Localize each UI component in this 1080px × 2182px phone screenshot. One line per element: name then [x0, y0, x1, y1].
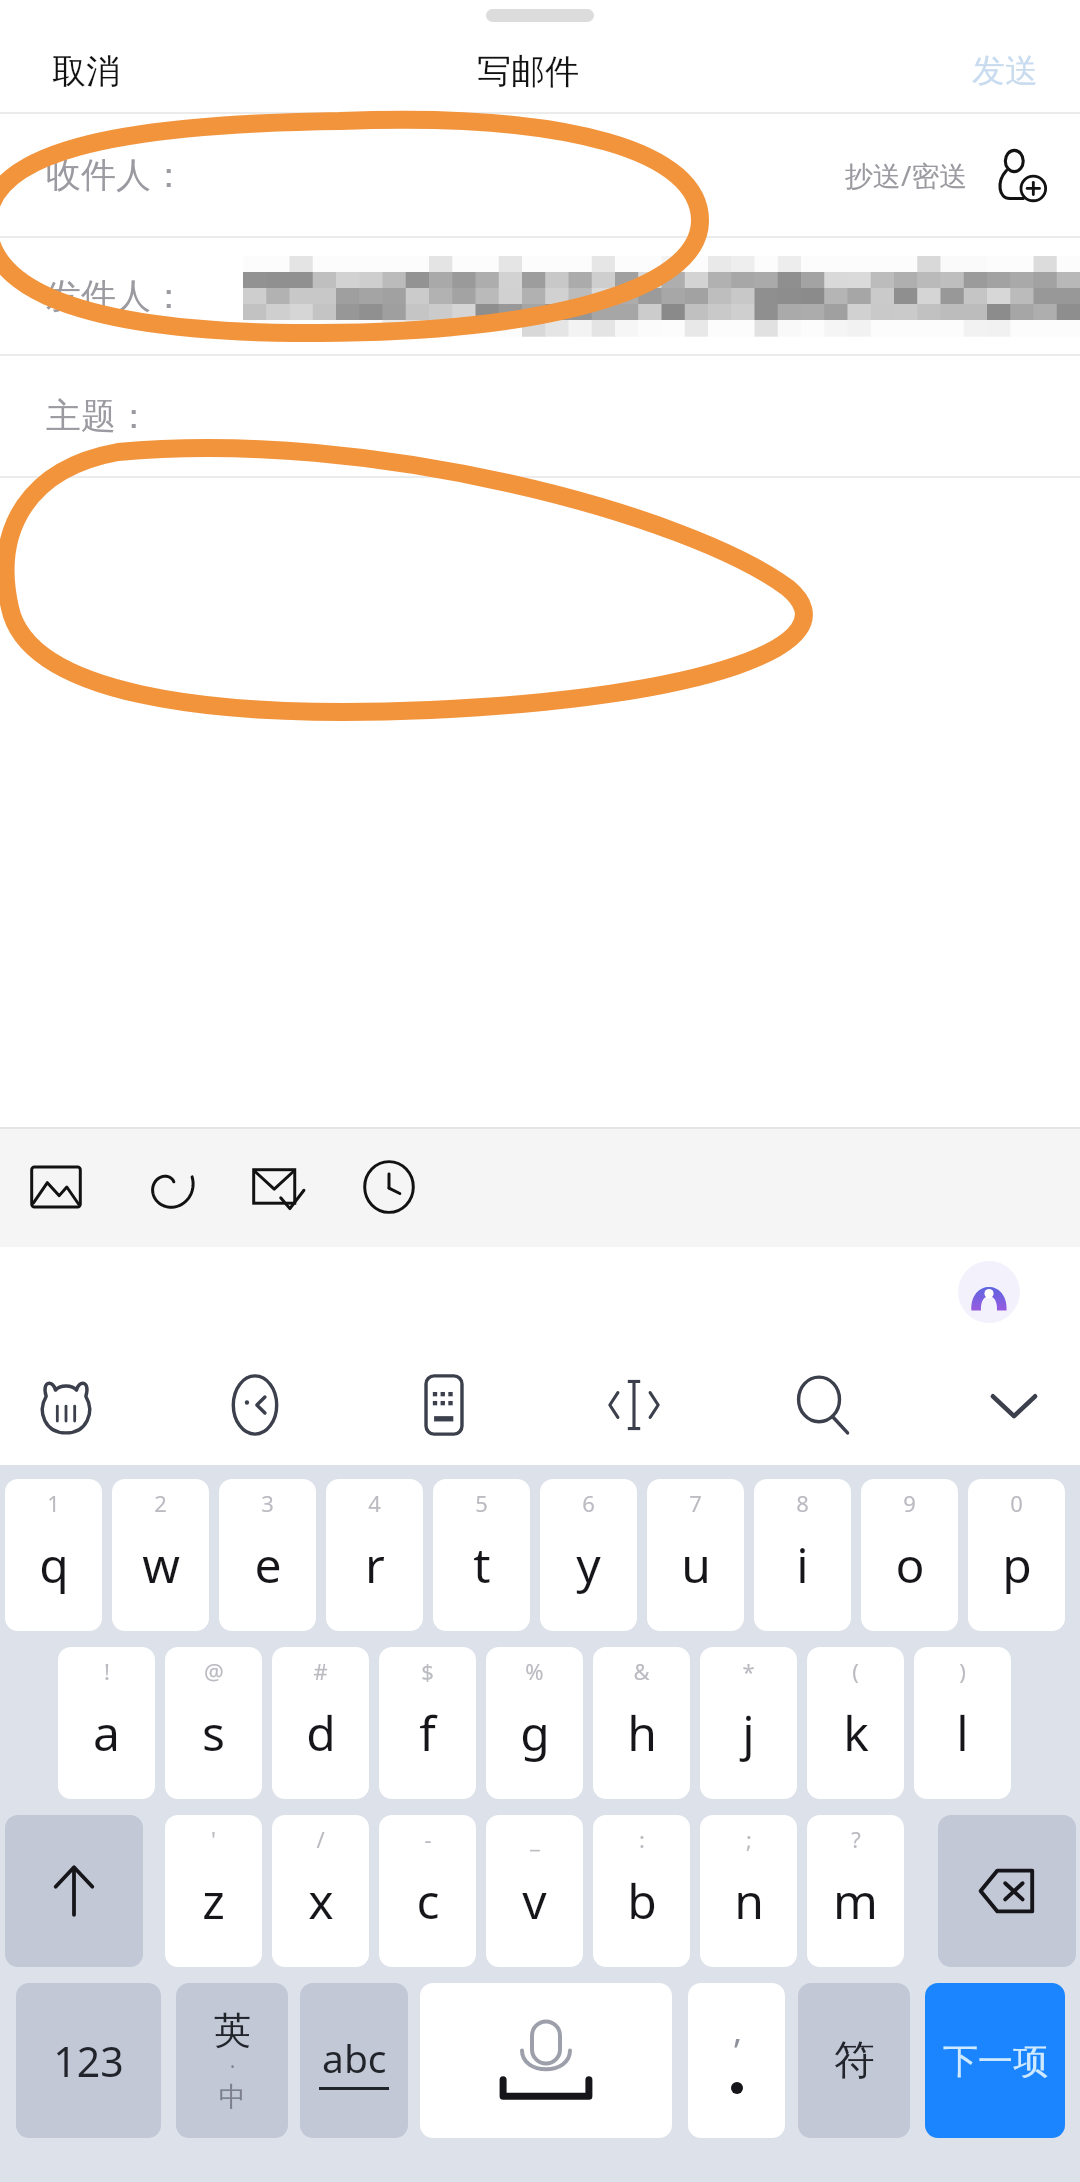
staticText: 发件人： [46, 274, 186, 318]
button[interactable]: 定时发送 [355, 1153, 423, 1221]
staticText: / [316, 1824, 325, 1854]
staticText: ) [959, 1656, 966, 1686]
staticText: f [419, 1700, 436, 1765]
button[interactable]: 发送 [966, 42, 1044, 100]
staticText: r [365, 1532, 385, 1597]
button[interactable]: 7 [647, 1479, 744, 1631]
button[interactable]: 逗号句号 [688, 1983, 785, 2138]
button[interactable]: 下一项 [925, 1983, 1065, 2138]
button[interactable]: 删除 [938, 1815, 1076, 1967]
button[interactable]: 搜索 [780, 1361, 868, 1449]
staticText: 1 [47, 1488, 60, 1518]
button[interactable]: 3 [219, 1479, 316, 1631]
button[interactable]: ? [807, 1815, 904, 1967]
button[interactable]: 表情 [211, 1361, 299, 1449]
button[interactable]: 123 [16, 1983, 161, 2138]
staticText: u [681, 1532, 711, 1597]
staticText: x [308, 1868, 334, 1933]
staticText: 英 [214, 2007, 251, 2054]
staticText: c [416, 1868, 440, 1933]
staticText: 6 [582, 1488, 595, 1518]
staticText: @ [204, 1656, 224, 1686]
staticText: d [306, 1700, 336, 1765]
staticText: 7 [689, 1488, 702, 1518]
button[interactable]: ! [58, 1647, 155, 1799]
staticText: i [796, 1532, 809, 1597]
staticText: k [843, 1700, 869, 1765]
button[interactable]: & [593, 1647, 690, 1799]
staticText: 符 [834, 2035, 875, 2087]
staticText: l [956, 1700, 969, 1765]
staticText: & [633, 1656, 650, 1686]
button[interactable]: _ [486, 1815, 583, 1967]
staticText: $ [421, 1656, 434, 1686]
staticText: 中 [219, 2080, 246, 2114]
staticText: * [742, 1656, 755, 1686]
button[interactable]: 收件人： [0, 114, 1080, 236]
button[interactable]: 取消 [46, 42, 126, 101]
staticText: _ [530, 1824, 540, 1854]
button[interactable]: / [272, 1815, 369, 1967]
button[interactable]: Shift 大写 [5, 1815, 143, 1967]
staticText: h [627, 1700, 657, 1765]
staticText: ! [104, 1656, 110, 1686]
button[interactable]: 5 [433, 1479, 530, 1631]
button[interactable]: 主题： [0, 356, 1080, 476]
button[interactable]: 符 [798, 1983, 910, 2138]
button[interactable]: 输入法 [22, 1361, 110, 1449]
staticText: ? [851, 1824, 861, 1854]
button[interactable]: * [700, 1647, 797, 1799]
button[interactable]: ) [914, 1647, 1011, 1799]
button[interactable]: 2 [112, 1479, 209, 1631]
staticText: a [93, 1700, 120, 1765]
button[interactable]: 收起键盘 [970, 1361, 1058, 1449]
staticText: y [576, 1532, 601, 1597]
button[interactable]: ( [807, 1647, 904, 1799]
button[interactable]: 8 [754, 1479, 851, 1631]
staticText: e [254, 1532, 282, 1597]
staticText: 3 [261, 1488, 274, 1518]
staticText: s [202, 1700, 225, 1765]
staticText: 下一项 [943, 2039, 1048, 2083]
button[interactable]: 键盘面板 [400, 1361, 488, 1449]
button[interactable]: 发件人： [0, 238, 1080, 354]
button[interactable]: : [593, 1815, 690, 1967]
button[interactable]: % [486, 1647, 583, 1799]
staticText: q [39, 1532, 69, 1597]
button[interactable]: @ [165, 1647, 262, 1799]
staticText: t [473, 1532, 491, 1597]
button[interactable]: 添加联系人 [984, 138, 1058, 212]
button[interactable]: 英 [176, 1983, 288, 2138]
staticText: ; [746, 1824, 752, 1854]
button[interactable]: 签名 [133, 1153, 201, 1221]
staticText: 收件人： [46, 153, 186, 197]
button[interactable]: $ [379, 1647, 476, 1799]
staticText: n [734, 1868, 764, 1933]
button[interactable]: AI 助手 [958, 1261, 1020, 1323]
button[interactable]: abc [300, 1983, 408, 2138]
button[interactable]: 移动光标 [590, 1361, 678, 1449]
staticText: % [525, 1656, 544, 1686]
button[interactable]: 4 [326, 1479, 423, 1631]
staticText: ( [852, 1656, 859, 1686]
staticText: # [313, 1656, 328, 1686]
button[interactable]: 9 [861, 1479, 958, 1631]
staticText: j [742, 1700, 755, 1765]
button[interactable]: - [379, 1815, 476, 1967]
button[interactable]: 1 [5, 1479, 102, 1631]
staticText: 123 [53, 2033, 124, 2089]
button[interactable]: 插入图片 [22, 1153, 90, 1221]
button[interactable]: ' [165, 1815, 262, 1967]
staticText: abc [322, 2031, 387, 2084]
button[interactable]: # [272, 1647, 369, 1799]
button[interactable]: 空格 [420, 1983, 672, 2138]
staticText: ’ [734, 2028, 740, 2074]
button[interactable]: 0 [968, 1479, 1065, 1631]
staticText: 5 [475, 1488, 488, 1518]
staticText: 抄送/密送 [845, 156, 968, 194]
button[interactable]: ; [700, 1815, 797, 1967]
button[interactable]: 6 [540, 1479, 637, 1631]
staticText: 9 [903, 1488, 916, 1518]
button[interactable]: 已读回执 [244, 1153, 312, 1221]
staticText: 写邮件 [477, 50, 579, 93]
